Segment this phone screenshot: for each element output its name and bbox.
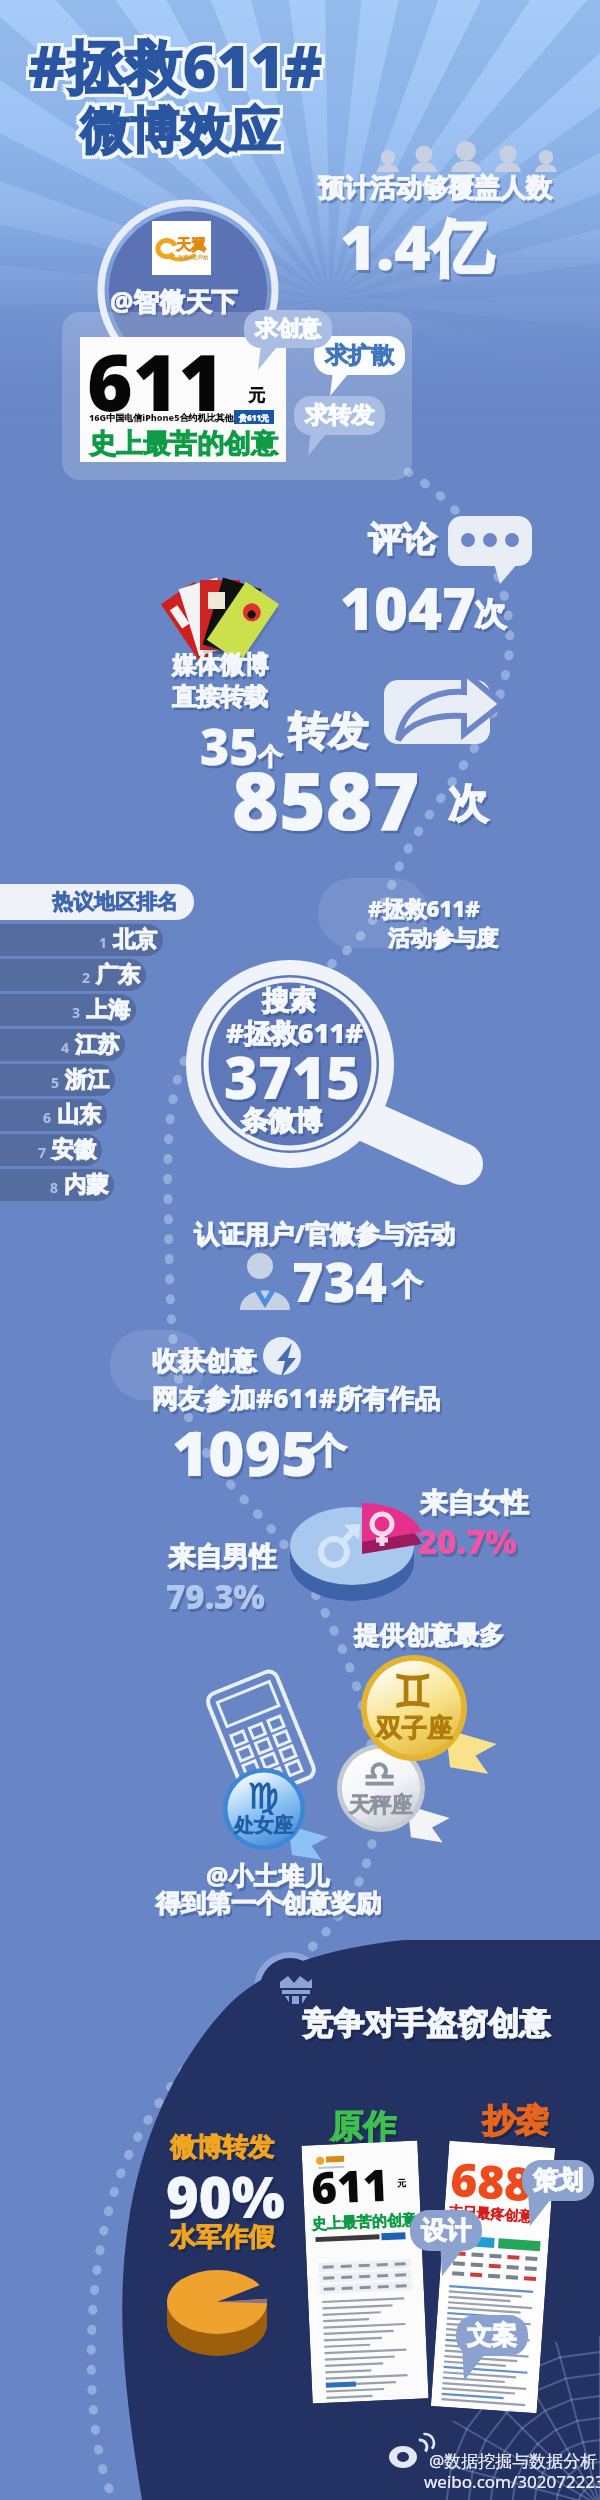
staticText: 认证用户/官微参与活动: [196, 1219, 458, 1253]
staticText: 35: [202, 715, 261, 783]
button[interactable]: @数据挖掘与数据分析: [429, 2449, 598, 2472]
staticText: 次: [476, 597, 508, 637]
staticText: @智微天下: [110, 283, 238, 319]
staticText: 北京: [113, 926, 157, 954]
button[interactable]: 策划: [533, 2165, 583, 2196]
staticText: 来自男性: [170, 1543, 278, 1577]
staticText: 16G中国电信iPhone5合约机比其他运营商: [89, 411, 261, 423]
button[interactable]: [0, 1029, 125, 1061]
staticText: @小土堆儿: [208, 1861, 331, 1895]
staticText: 来自女性: [420, 1486, 528, 1520]
staticText: #拯救611#: [28, 29, 323, 108]
button[interactable]: 天翼: [152, 221, 211, 275]
staticText: 双子座: [376, 1713, 453, 1745]
staticText: 水军作假: [170, 2221, 274, 2254]
button[interactable]: [223, 1768, 342, 1871]
staticText: #拯救611#: [25, 29, 320, 108]
staticText: 收获创意: [152, 1345, 256, 1378]
staticText: 微博转发: [170, 2131, 274, 2164]
staticText: 转发: [290, 709, 370, 759]
staticText: 山东: [57, 1101, 101, 1129]
button[interactable]: 文案: [467, 2320, 517, 2351]
button[interactable]: 611: [80, 337, 286, 462]
staticText: 预计活动够覆盖人数: [320, 175, 554, 208]
staticText: #拯救611#: [31, 26, 326, 105]
staticText: @小土堆儿: [206, 1858, 329, 1892]
button[interactable]: 设计: [421, 2215, 471, 2246]
button[interactable]: [0, 1064, 115, 1096]
staticText: 734: [294, 1247, 389, 1321]
staticText: 提供创意最多: [356, 1623, 506, 1654]
staticText: 次: [450, 781, 490, 831]
staticText: 1047: [340, 568, 476, 647]
button[interactable]: [0, 1099, 107, 1131]
staticText: 35: [200, 712, 259, 780]
staticText: 个: [310, 1428, 346, 1473]
staticText: 网友参加#611#所有作品: [152, 1380, 441, 1416]
staticText: 90%: [168, 2161, 287, 2237]
staticText: #拯救611#: [226, 1014, 364, 1051]
staticText: 个: [392, 1266, 422, 1304]
staticText: ♊: [393, 1666, 433, 1718]
staticText: 得到第一个创意奖励: [158, 1891, 383, 1922]
staticText: 3: [72, 1003, 81, 1022]
staticText: 611: [87, 328, 225, 434]
button[interactable]: weibo.com/302072223: [424, 2470, 600, 2493]
staticText: 8587: [232, 744, 420, 853]
button[interactable]: [361, 1655, 515, 1788]
staticText: 微博效应: [77, 100, 277, 163]
button[interactable]: 求扩散: [325, 341, 394, 370]
staticText: 79.3%: [166, 1574, 265, 1619]
staticText: 转发: [288, 706, 368, 756]
staticText: 个: [394, 1269, 424, 1307]
staticText: 原作: [332, 2109, 398, 2151]
staticText: 搜索: [264, 987, 318, 1021]
button[interactable]: [337, 1744, 465, 1854]
button[interactable]: 求创意: [255, 315, 321, 343]
staticText: 734: [292, 1244, 387, 1318]
staticText: 7: [38, 1143, 47, 1162]
staticText: 广东: [96, 961, 140, 989]
staticText: 2: [82, 968, 91, 987]
staticText: 抄袭: [484, 2103, 550, 2145]
staticText: 安徽: [52, 1136, 96, 1164]
staticText: 微博效应: [80, 100, 280, 163]
button[interactable]: 611: [301, 2141, 428, 2403]
staticText: 原作: [330, 2106, 396, 2148]
button[interactable]: Weibo: [389, 2438, 427, 2470]
staticText: #拯救611#: [25, 23, 320, 102]
button[interactable]: [0, 924, 163, 956]
staticText: 个: [258, 742, 282, 772]
staticText: 688: [449, 2147, 534, 2215]
staticText: 个: [260, 745, 284, 775]
button[interactable]: [0, 1169, 114, 1201]
staticText: 微博效应: [83, 97, 283, 160]
staticText: 次: [448, 778, 488, 828]
staticText: 上海: [86, 996, 130, 1024]
staticText: 90%: [166, 2158, 285, 2234]
staticText: 4: [61, 1038, 70, 1057]
staticText: 得到第一个创意奖励: [156, 1888, 381, 1919]
button[interactable]: 热议地区排名: [0, 884, 194, 920]
button[interactable]: 688: [431, 2141, 555, 2413]
staticText: 微博转发: [172, 2134, 276, 2167]
staticText: 江苏: [75, 1031, 119, 1059]
button[interactable]: [0, 1134, 102, 1166]
button[interactable]: [0, 959, 146, 991]
staticText: 微博效应: [80, 103, 280, 166]
staticText: 6: [43, 1108, 52, 1127]
staticText: 评论: [368, 518, 436, 561]
staticText: 1.4亿: [340, 204, 493, 289]
staticText: 求创意: [255, 315, 321, 343]
staticText: 条微博: [243, 1107, 324, 1141]
staticText: 史上最苦的创意: [89, 427, 278, 461]
staticText: 求扩散: [325, 341, 394, 370]
staticText: 媒体微博: [172, 650, 268, 680]
button[interactable]: 求转发: [305, 401, 374, 430]
staticText: 活动参与度: [388, 925, 498, 953]
staticText: 天秤座: [349, 1792, 413, 1819]
staticText: 来自男性: [168, 1540, 276, 1574]
button[interactable]: [0, 994, 136, 1026]
staticText: 评论: [370, 521, 438, 564]
staticText: ♎: [363, 1753, 397, 1796]
